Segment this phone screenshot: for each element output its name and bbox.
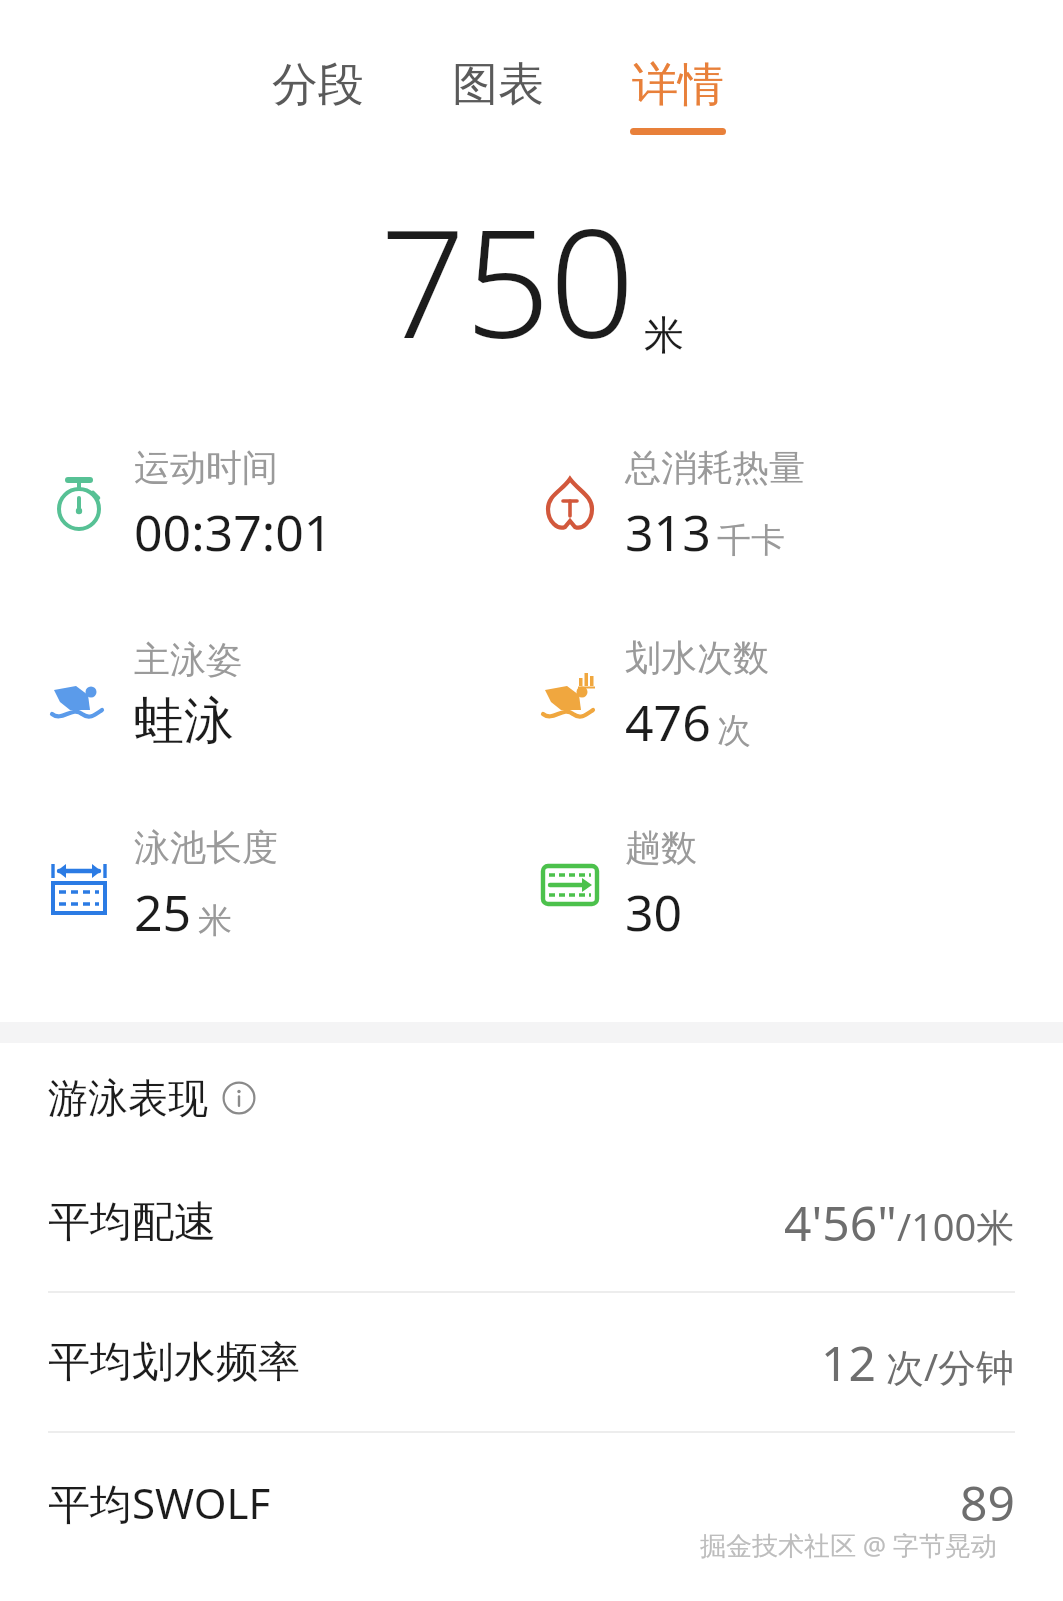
staticText: 米: [644, 310, 684, 360]
staticText: 次: [717, 709, 751, 752]
staticText: 平均配速: [48, 1196, 216, 1249]
staticText: /100米: [897, 1200, 1015, 1252]
staticText: 游泳表现: [48, 1073, 208, 1123]
staticText: 4'56": [784, 1190, 897, 1255]
button[interactable]: 平均划水频率: [0, 1293, 1063, 1431]
staticText: 总消耗热量: [625, 445, 805, 490]
staticText: 平均SWOLF: [48, 1474, 271, 1531]
staticText: 趟数: [625, 825, 697, 870]
staticText: 米: [198, 899, 232, 942]
staticText: 详情: [632, 56, 724, 114]
staticText: 分段: [272, 56, 364, 114]
staticText: 主泳姿: [134, 637, 242, 682]
button[interactable]: 泳池长度: [46, 790, 531, 980]
button[interactable]: 分段: [228, 0, 408, 150]
button[interactable]: 详情: [588, 0, 768, 150]
button[interactable]: 平均配速: [0, 1153, 1063, 1291]
staticText: 次/分钟: [876, 1340, 1015, 1392]
staticText: 313: [625, 498, 711, 566]
staticText: 12: [821, 1330, 876, 1395]
button[interactable]: 平均SWOLF: [0, 1433, 1063, 1571]
staticText: 千卡: [717, 519, 785, 562]
button[interactable]: 总消耗热量: [537, 410, 1063, 600]
button[interactable]: 主泳姿: [46, 600, 531, 790]
staticText: 00:37:01: [134, 498, 333, 566]
staticText: 划水次数: [625, 635, 769, 680]
button[interactable]: 划水次数: [537, 600, 1063, 790]
button[interactable]: 关于游泳表现: [222, 1081, 256, 1115]
staticText: 蛙泳: [134, 690, 234, 753]
staticText: 运动时间: [134, 445, 278, 490]
staticText: 750: [380, 178, 634, 382]
staticText: 476: [625, 688, 711, 756]
button[interactable]: 运动时间: [46, 410, 531, 600]
button[interactable]: 趟数: [537, 790, 1063, 980]
staticText: 泳池长度: [134, 825, 278, 870]
button[interactable]: 图表: [408, 0, 588, 150]
staticText: 89: [960, 1470, 1015, 1535]
staticText: 图表: [452, 56, 544, 114]
staticText: 25: [134, 878, 192, 946]
staticText: 掘金技术社区 @ 字节晃动: [700, 1527, 997, 1563]
staticText: 平均划水频率: [48, 1336, 300, 1389]
staticText: 30: [625, 878, 683, 946]
